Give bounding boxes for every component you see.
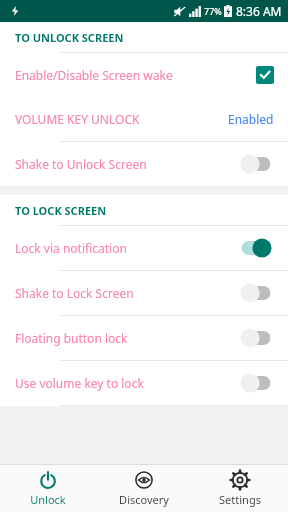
staticText: Shake to Lock Screen xyxy=(15,285,134,301)
button[interactable]: Enable/Disable Screen wake xyxy=(0,53,288,97)
staticText: Enabled xyxy=(228,111,274,127)
button[interactable]: Toggle on xyxy=(238,236,274,260)
button[interactable]: Use volume key to lock xyxy=(0,361,288,405)
button[interactable]: Enable screen wake checkbox xyxy=(256,66,274,84)
button[interactable]: Floating button lock xyxy=(0,316,288,360)
staticText: Settings xyxy=(219,492,261,507)
button[interactable]: Lock via notification xyxy=(0,226,288,270)
staticText: Enable/Disable Screen wake xyxy=(15,67,173,83)
staticText: Discovery xyxy=(119,492,169,507)
button[interactable]: Settings xyxy=(192,465,288,512)
staticText: Floating button lock xyxy=(15,330,128,346)
button[interactable]: VOLUME KEY UNLOCK xyxy=(0,97,288,141)
staticText: Shake to Unlock Screen xyxy=(15,156,147,172)
staticText: TO LOCK SCREEN xyxy=(15,203,107,218)
staticText: 77% xyxy=(204,5,222,17)
button[interactable]: Toggle off xyxy=(238,281,274,305)
staticText: TO UNLOCK SCREEN xyxy=(15,30,124,45)
staticText: 8:36 AM xyxy=(236,3,282,19)
button[interactable]: Shake to Lock Screen xyxy=(0,271,288,315)
button[interactable]: Unlock xyxy=(0,465,96,512)
button[interactable]: Toggle off xyxy=(238,326,274,350)
staticText: VOLUME KEY UNLOCK xyxy=(15,111,140,127)
button[interactable]: Discovery xyxy=(96,465,192,512)
staticText: Use volume key to lock xyxy=(15,375,144,391)
button[interactable]: Toggle off xyxy=(238,152,274,176)
staticText: Unlock xyxy=(30,492,66,507)
button[interactable]: Toggle off xyxy=(238,371,274,395)
button[interactable]: Shake to Unlock Screen xyxy=(0,142,288,186)
staticText: Lock via notification xyxy=(15,240,127,256)
